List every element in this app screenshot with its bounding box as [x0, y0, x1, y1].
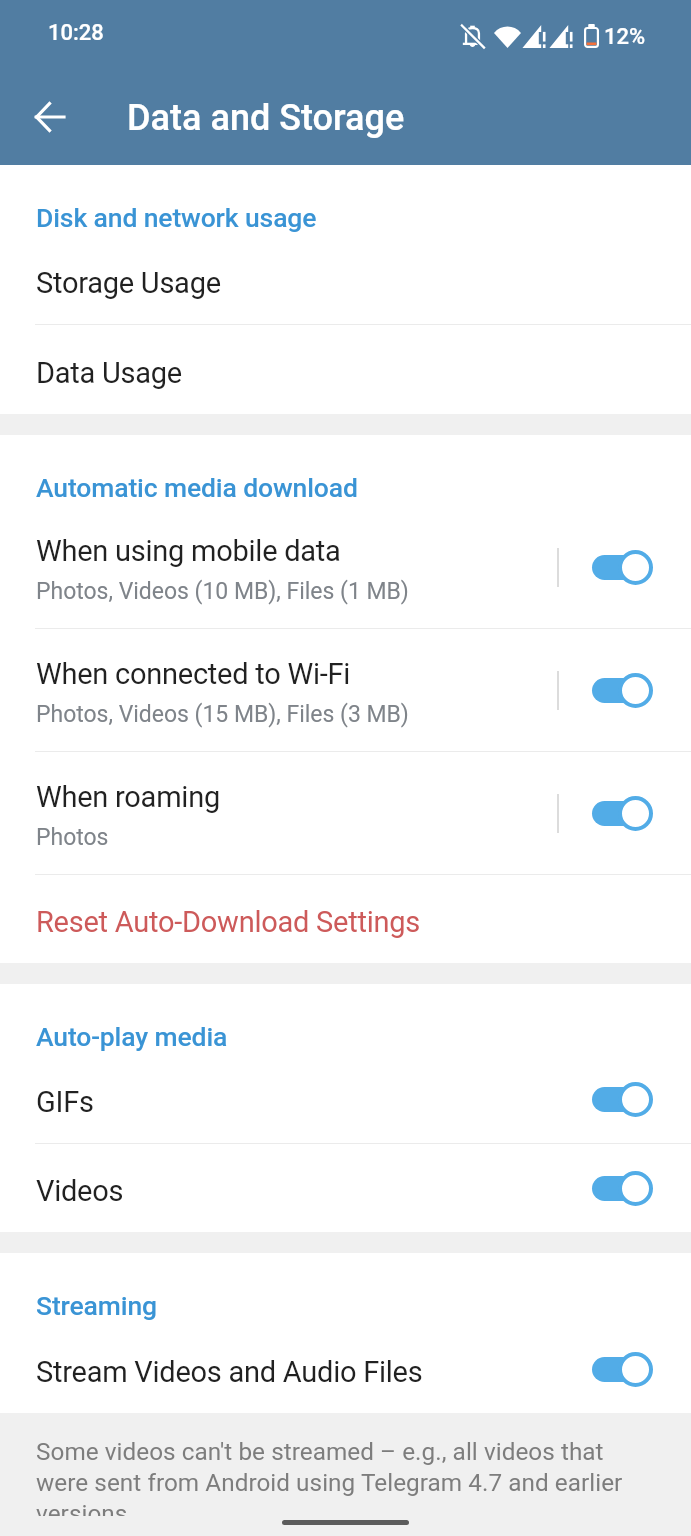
staticText: Automatic media download	[36, 472, 358, 503]
staticText: Data and Storage	[127, 97, 405, 139]
button[interactable]: Data Usage	[0, 325, 691, 414]
button[interactable]: Back	[14, 82, 84, 152]
staticText: 12%	[604, 24, 646, 50]
staticText: Storage Usage	[36, 266, 221, 300]
button[interactable]: Videos	[0, 1144, 691, 1232]
staticText: Auto-play media	[36, 1021, 228, 1052]
staticText: Data Usage	[36, 356, 182, 390]
button[interactable]: Toggle GIFs	[578, 1069, 667, 1129]
staticText: Photos	[36, 824, 109, 851]
button[interactable]: Toggle When connected to Wi-Fi	[578, 660, 667, 720]
staticText: Stream Videos and Audio Files	[36, 1355, 423, 1389]
staticText: Reset Auto-Download Settings	[36, 905, 420, 939]
staticText: Some videos can't be streamed – e.g., al…	[36, 1437, 649, 1516]
button[interactable]: Toggle Videos	[578, 1158, 667, 1218]
button[interactable]: When roaming	[0, 752, 691, 874]
button[interactable]: GIFs	[0, 1055, 691, 1143]
staticText: Photos, Videos (10 MB), Files (1 MB)	[36, 578, 409, 605]
button[interactable]: Toggle When roaming	[578, 783, 667, 843]
staticText: When connected to Wi-Fi	[36, 657, 351, 691]
staticText: When using mobile data	[36, 534, 341, 568]
staticText: GIFs	[36, 1085, 94, 1119]
staticText: Streaming	[36, 1290, 157, 1321]
staticText: Videos	[36, 1174, 124, 1208]
staticText: Disk and network usage	[36, 202, 317, 233]
button[interactable]: Reset Auto-Download Settings	[0, 875, 691, 963]
button[interactable]: When connected to Wi-Fi	[0, 629, 691, 751]
staticText: Photos, Videos (15 MB), Files (3 MB)	[36, 701, 409, 728]
staticText: When roaming	[36, 780, 220, 814]
staticText: 10:28	[48, 20, 104, 46]
button[interactable]: Toggle When using mobile data	[578, 537, 667, 597]
button[interactable]: When using mobile data	[0, 506, 691, 628]
button[interactable]: Storage Usage	[0, 236, 691, 324]
button[interactable]: Toggle Stream Videos and Audio Files	[578, 1339, 667, 1399]
button[interactable]: Stream Videos and Audio Files	[0, 1324, 691, 1413]
